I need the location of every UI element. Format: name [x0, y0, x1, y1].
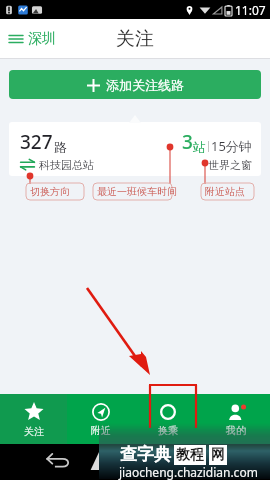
staticText: 关注: [116, 27, 154, 51]
staticText: 教程: [176, 446, 204, 464]
other: Menu: [9, 33, 23, 45]
button[interactable]: 327: [9, 122, 261, 176]
staticText: 最近一班候车时间: [97, 185, 177, 198]
button[interactable]: Menu: [0, 24, 64, 54]
button[interactable]: 添加关注线路: [9, 70, 261, 99]
staticText: 查字典: [120, 444, 171, 465]
staticText: 网: [211, 446, 225, 464]
other: Recents: [88, 452, 101, 470]
button[interactable]: 我的: [202, 394, 270, 444]
staticText: 关注: [24, 425, 44, 438]
staticText: 深圳: [28, 30, 56, 48]
staticText: 15分钟: [211, 137, 252, 155]
button[interactable]: 关注: [0, 394, 67, 444]
staticText: 世界之窗: [208, 158, 252, 171]
staticText: 换乘: [158, 424, 178, 437]
staticText: 附近站点: [205, 185, 245, 198]
staticText: 切换方向: [30, 185, 70, 198]
staticText: 站: [193, 139, 206, 155]
button[interactable]: 换乘: [134, 394, 202, 444]
staticText: 11:07: [235, 2, 266, 18]
staticText: jiaocheng.chazidian.com: [119, 464, 258, 480]
staticText: 路: [54, 139, 67, 155]
staticText: 327: [20, 129, 53, 155]
staticText: 科技园总站: [39, 158, 94, 171]
staticText: 3: [182, 129, 193, 155]
other: Back: [44, 450, 70, 472]
staticText: 添加关注线路: [106, 77, 184, 93]
staticText: 附近: [91, 424, 111, 437]
staticText: 我的: [226, 424, 246, 437]
button[interactable]: 附近: [67, 394, 134, 444]
